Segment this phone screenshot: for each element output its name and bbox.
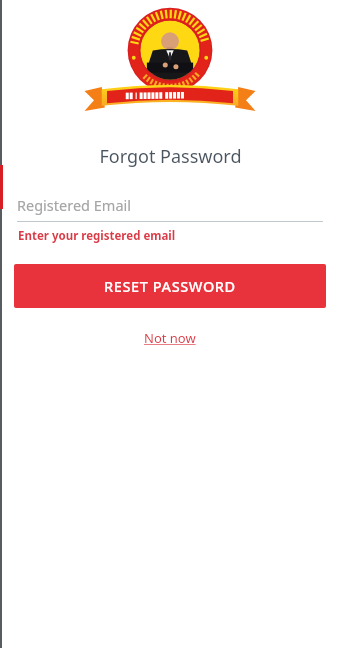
staticText: Forgot Password bbox=[99, 144, 242, 169]
staticText: RESET PASSWORD bbox=[104, 276, 236, 296]
button[interactable]: Not now bbox=[136, 325, 204, 351]
button[interactable]: Registered Email bbox=[17, 191, 323, 219]
staticText: Not now bbox=[144, 329, 196, 347]
staticText: Enter your registered email bbox=[18, 228, 176, 244]
staticText: Registered Email bbox=[17, 195, 132, 215]
button[interactable]: RESET PASSWORD bbox=[14, 264, 326, 308]
